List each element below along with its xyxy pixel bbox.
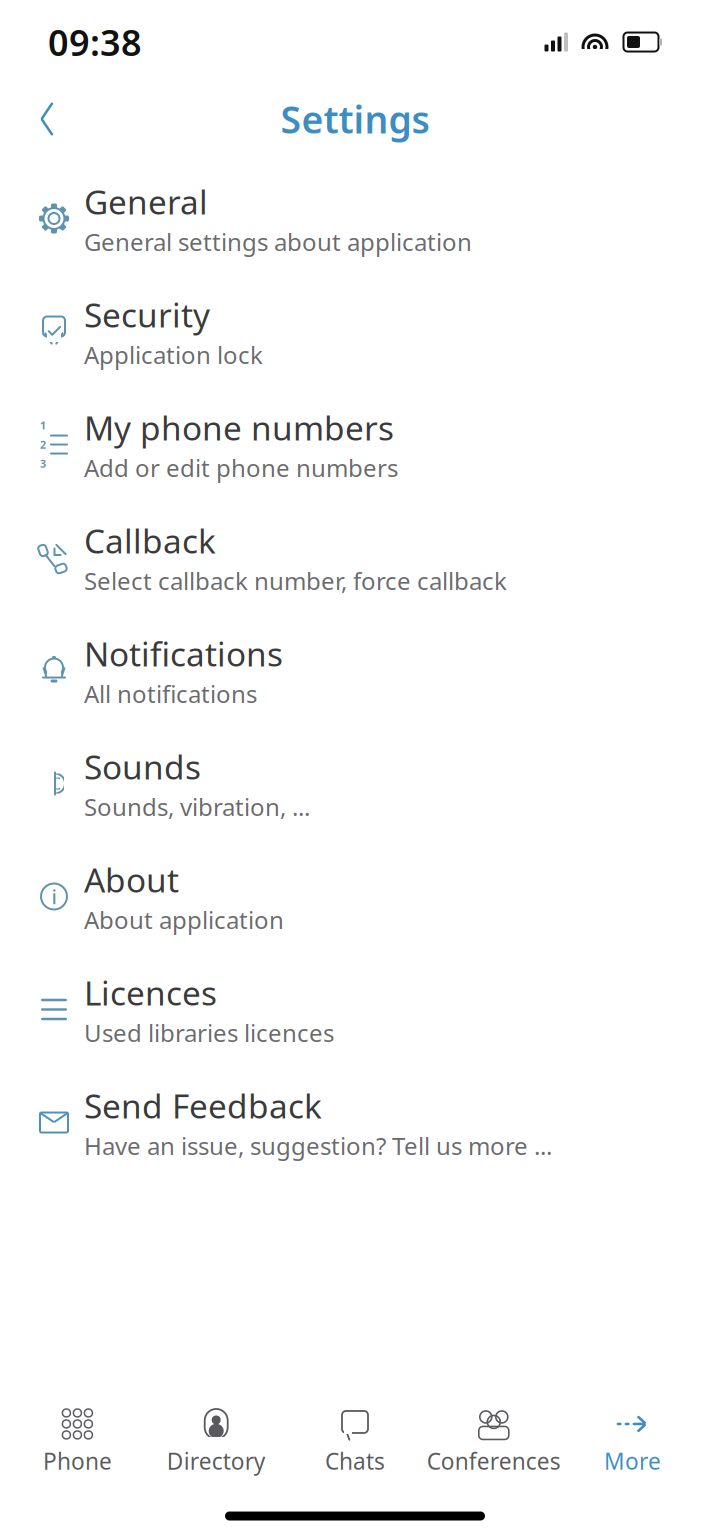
- button[interactable]: Chats: [286, 1400, 424, 1482]
- staticText: Chats: [325, 1446, 385, 1476]
- staticText: i: [51, 883, 56, 910]
- button[interactable]: Sounds: [0, 727, 710, 840]
- staticText: Sounds, vibration, ...: [84, 791, 310, 823]
- button[interactable]: 1: [0, 388, 710, 501]
- staticText: All notifications: [84, 678, 257, 710]
- staticText: Add or edit phone numbers: [84, 452, 398, 484]
- staticText: Have an issue, suggestion? Tell us more …: [84, 1130, 552, 1162]
- staticText: About: [84, 857, 179, 902]
- staticText: Settings: [280, 94, 429, 144]
- staticText: 1: [40, 418, 46, 432]
- button[interactable]: Licences: [0, 953, 710, 1066]
- staticText: Directory: [167, 1446, 266, 1476]
- staticText: Security: [84, 292, 210, 337]
- button[interactable]: i: [0, 840, 710, 953]
- staticText: General settings about application: [84, 226, 472, 258]
- staticText: Conferences: [427, 1446, 561, 1476]
- staticText: Notifications: [84, 631, 283, 676]
- staticText: Phone: [43, 1446, 112, 1476]
- staticText: 3: [40, 457, 46, 471]
- staticText: Licences: [84, 970, 217, 1015]
- staticText: General: [84, 179, 208, 224]
- staticText: 2: [40, 437, 46, 452]
- button[interactable]: Conferences: [424, 1400, 563, 1482]
- staticText: Callback: [84, 518, 216, 563]
- staticText: My phone numbers: [84, 405, 394, 450]
- staticText: Application lock: [84, 339, 263, 371]
- staticText: Sounds: [84, 744, 201, 789]
- button[interactable]: Send Feedback: [0, 1066, 710, 1179]
- button[interactable]: Phone: [8, 1400, 147, 1482]
- button[interactable]: More: [563, 1400, 702, 1482]
- button[interactable]: Directory: [147, 1400, 286, 1482]
- staticText: Select callback number, force callback: [84, 565, 507, 597]
- staticText: Send Feedback: [84, 1083, 322, 1128]
- button[interactable]: Back: [20, 92, 74, 146]
- button[interactable]: Security: [0, 275, 710, 388]
- button[interactable]: Callback: [0, 501, 710, 614]
- staticText: Used libraries licences: [84, 1017, 334, 1049]
- staticText: More: [604, 1446, 661, 1476]
- button[interactable]: General: [0, 162, 710, 275]
- button[interactable]: Notifications: [0, 614, 710, 727]
- staticText: 09:38: [48, 18, 142, 66]
- staticText: About application: [84, 904, 284, 936]
